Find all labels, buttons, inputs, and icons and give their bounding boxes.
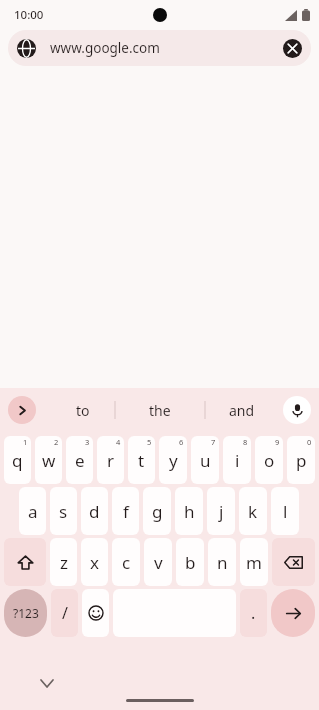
button[interactable]: Emoji [82,589,109,637]
button[interactable]: k [239,487,267,535]
button[interactable]: f [112,487,139,535]
staticText: d [89,500,100,523]
staticText: l [283,500,288,523]
staticText: the [149,401,171,420]
button[interactable]: and [206,388,278,432]
staticText: to [76,401,90,420]
staticText: 1 [23,437,28,447]
staticText: r [107,449,115,472]
button[interactable]: g [143,487,171,535]
staticText: . [251,602,256,624]
staticText: w [42,449,56,472]
button[interactable]: to [52,388,114,432]
staticText: k [248,500,258,523]
button[interactable]: z [50,538,77,586]
button[interactable]: Backspace [272,538,315,586]
button[interactable]: v [144,538,172,586]
button[interactable]: w [35,436,62,484]
staticText: 3 [85,437,90,447]
button[interactable]: s [50,487,77,535]
button[interactable]: x [81,538,108,586]
staticText: a [28,500,38,523]
staticText: q [12,449,23,472]
staticText: b [185,551,196,574]
staticText: 10:00 [14,7,44,23]
button[interactable]: . [240,589,267,637]
staticText: www.google.com [50,39,160,57]
button[interactable]: Clear [283,39,302,58]
staticText: e [75,449,85,472]
staticText: f [123,500,129,523]
staticText: 7 [211,437,216,447]
button[interactable]: o [255,436,283,484]
button[interactable]: d [81,487,108,535]
staticText: 9 [275,437,280,447]
staticText: g [152,500,163,523]
staticText: h [184,500,195,523]
button[interactable]: / [51,589,78,637]
button[interactable]: More suggestions [8,396,36,424]
button[interactable]: y [159,436,187,484]
staticText: s [59,500,68,523]
staticText: u [200,449,211,472]
other: Site info [17,39,36,58]
staticText: z [60,551,68,574]
button[interactable]: Shift [4,538,46,586]
button[interactable]: p [287,436,315,484]
staticText: 0 [307,437,312,447]
staticText: 8 [243,437,248,447]
button[interactable]: b [176,538,204,586]
button[interactable]: c [112,538,140,586]
button[interactable]: Voice input [283,396,311,424]
staticText: / [62,602,68,624]
staticText: x [90,551,99,574]
staticText: ?123 [13,605,39,621]
button[interactable]: h [175,487,203,535]
staticText: 4 [116,437,121,447]
staticText: j [219,500,224,523]
button[interactable]: j [207,487,235,535]
staticText: i [235,449,240,472]
staticText: y [169,449,178,472]
button[interactable]: ?123 [4,589,47,637]
staticText: 5 [147,437,152,447]
staticText: o [264,449,275,472]
staticText: n [217,551,228,574]
staticText: p [296,449,307,472]
staticText: v [154,551,163,574]
button[interactable]: q [4,436,31,484]
button[interactable]: u [191,436,219,484]
button[interactable]: m [240,538,268,586]
staticText: 6 [179,437,184,447]
button[interactable]: i [223,436,251,484]
button[interactable]: Go [271,589,315,637]
button[interactable]: the [116,388,204,432]
button[interactable]: Site info [8,30,311,66]
button[interactable]: a [19,487,46,535]
staticText: 2 [54,437,59,447]
staticText: c [122,551,131,574]
button[interactable]: l [271,487,299,535]
staticText: and [229,401,255,420]
button[interactable]: t [128,436,155,484]
staticText: m [246,551,262,574]
button[interactable]: r [97,436,124,484]
button[interactable]: e [66,436,93,484]
button[interactable]: Hide keyboard [36,672,58,694]
button[interactable]: n [208,538,236,586]
staticText: t [138,449,145,472]
